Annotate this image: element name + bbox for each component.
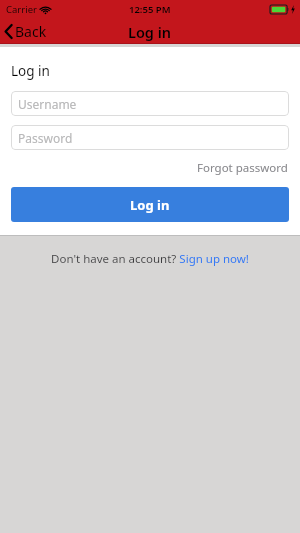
staticText: Carrier [6, 3, 37, 16]
button[interactable]: Back [0, 19, 55, 44]
button[interactable]: Username [11, 91, 289, 116]
staticText: Log in [11, 62, 50, 80]
staticText: Back [15, 22, 47, 41]
staticText: Log in [128, 22, 172, 42]
button[interactable]: Password [11, 125, 289, 150]
staticText: Don't have an account? Sign up now! [51, 251, 249, 267]
staticText: Forgot password [197, 160, 288, 176]
button[interactable]: Log in [11, 187, 289, 222]
staticText: Log in [130, 196, 170, 214]
button[interactable]: Forgot password [196, 158, 289, 178]
button[interactable]: Don't have an account? Sign up now! [51, 251, 249, 267]
staticText: Password [18, 130, 73, 146]
staticText: Username [18, 96, 77, 112]
staticText: 12:55 PM [129, 3, 171, 16]
